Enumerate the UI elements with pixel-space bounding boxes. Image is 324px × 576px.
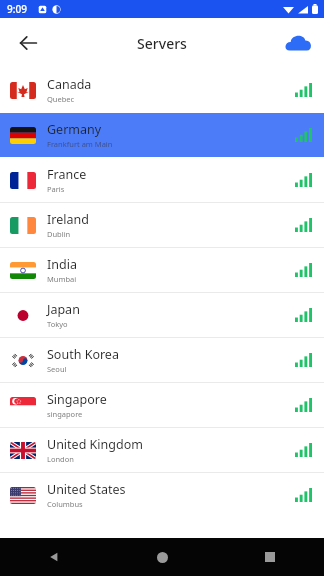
button[interactable]: Cloud (278, 23, 318, 63)
button[interactable]: Back (8, 23, 48, 63)
staticText: Ireland (47, 211, 89, 228)
button[interactable]: Japan (0, 293, 324, 337)
staticText: Mumbai (47, 274, 77, 284)
staticText: United Kingdom (47, 436, 143, 453)
button[interactable]: Singapore (0, 383, 324, 427)
staticText: Dublin (47, 229, 71, 239)
button[interactable]: France (0, 158, 324, 202)
staticText: Servers (137, 34, 187, 53)
button[interactable]: Germany (0, 113, 324, 157)
staticText: South Korea (47, 346, 119, 363)
staticText: Japan (47, 301, 80, 318)
staticText: Quebec (47, 94, 75, 104)
staticText: Tokyo (47, 319, 68, 329)
staticText: Columbus (47, 499, 83, 509)
button[interactable]: India (0, 248, 324, 292)
staticText: Seoul (47, 364, 67, 374)
staticText: India (47, 256, 77, 273)
staticText: Frankfurt am Main (47, 139, 113, 149)
button[interactable]: Canada (0, 68, 324, 112)
staticText: Germany (47, 121, 102, 138)
staticText: Canada (47, 76, 92, 93)
button[interactable]: Home (108, 538, 216, 576)
button[interactable]: United States (0, 473, 324, 517)
staticText: Paris (47, 184, 65, 194)
staticText: 9:09 (7, 2, 27, 16)
staticText: United States (47, 481, 126, 498)
button[interactable]: South Korea (0, 338, 324, 382)
button[interactable]: Ireland (0, 203, 324, 247)
staticText: London (47, 454, 74, 464)
button[interactable]: United Kingdom (0, 428, 324, 472)
staticText: Singapore (47, 391, 107, 408)
button[interactable]: Back (0, 538, 108, 576)
button[interactable]: Recents (216, 538, 324, 576)
staticText: France (47, 166, 87, 183)
staticText: singapore (47, 409, 83, 419)
